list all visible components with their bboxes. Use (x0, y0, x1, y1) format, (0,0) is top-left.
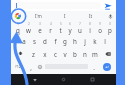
button[interactable]: s (29, 34, 40, 47)
button[interactable]: . (89, 60, 98, 73)
staticText: x (43, 50, 47, 58)
button[interactable]: h (70, 34, 80, 47)
staticText: 5 (60, 22, 62, 26)
button[interactable] (14, 2, 101, 9)
staticText: f (54, 37, 57, 45)
staticText: k (93, 37, 97, 45)
staticText: p (108, 26, 112, 34)
staticText: w (26, 26, 31, 34)
staticText: 7 (79, 22, 81, 26)
button[interactable]: j (80, 34, 90, 47)
staticText: It (89, 13, 93, 19)
staticText: l (104, 37, 106, 45)
button[interactable]: It (78, 11, 104, 21)
staticText: 3 (39, 22, 41, 26)
button[interactable]: Shift (12, 47, 28, 60)
staticText: I (64, 13, 66, 19)
button[interactable]: b (70, 47, 80, 60)
staticText: u (78, 26, 82, 34)
staticText: e (38, 26, 42, 34)
staticText: o (98, 26, 102, 34)
staticText: ?123 (15, 64, 24, 69)
button[interactable]: 6 (65, 22, 75, 34)
button[interactable]: Google search (11, 11, 25, 21)
staticText: m (92, 50, 98, 58)
button[interactable]: Backspace (100, 47, 115, 60)
staticText: c (54, 50, 57, 58)
button[interactable]: n (80, 47, 90, 60)
button[interactable]: Emoji (35, 60, 44, 73)
staticText: I'm (35, 13, 42, 19)
staticText: q (16, 26, 20, 34)
button[interactable]: m (90, 47, 100, 60)
staticText: a (22, 37, 26, 45)
staticText: j (84, 37, 86, 45)
staticText: 1 (17, 22, 19, 26)
button[interactable]: I'm (25, 11, 52, 21)
staticText: n (83, 50, 87, 58)
button[interactable]: k (90, 34, 100, 47)
button[interactable]: 8 (85, 22, 95, 34)
button[interactable]: f (50, 34, 60, 47)
button[interactable]: Voice input (104, 11, 116, 21)
button[interactable]: 4 (45, 22, 55, 34)
staticText: s (33, 37, 36, 45)
staticText: y (68, 26, 72, 34)
staticText: i (89, 26, 91, 34)
button[interactable]: l (100, 34, 110, 47)
button[interactable]: Home (58, 74, 69, 85)
button[interactable]: z (28, 47, 39, 60)
staticText: d (43, 37, 47, 45)
staticText: , (30, 63, 32, 71)
staticText: r (49, 26, 52, 34)
button[interactable]: Enter (103, 63, 111, 71)
button[interactable]: 1 (12, 22, 23, 34)
staticText: b (73, 50, 77, 58)
staticText: 0 (109, 22, 111, 26)
button[interactable]: 3 (34, 22, 45, 34)
staticText: v (63, 50, 67, 58)
button[interactable]: v (60, 47, 70, 60)
button[interactable]: 0 (105, 22, 115, 34)
button[interactable]: I (52, 11, 78, 21)
staticText: 9 (99, 22, 101, 26)
staticText: h (73, 37, 77, 45)
button[interactable]: ?123 (12, 60, 27, 73)
button[interactable]: 5 (55, 22, 65, 34)
button[interactable]: , (27, 60, 35, 73)
staticText: g (63, 37, 67, 45)
button[interactable]: a (18, 34, 29, 47)
staticText: t (59, 26, 62, 34)
staticText: . (93, 63, 95, 71)
button[interactable]: 9 (95, 22, 105, 34)
staticText: z (32, 50, 35, 58)
staticText: 8 (89, 22, 91, 26)
button[interactable]: 7 (75, 22, 85, 34)
button[interactable]: c (50, 47, 60, 60)
button[interactable]: 2 (23, 22, 34, 34)
button[interactable]: g (60, 34, 70, 47)
button[interactable]: x (39, 47, 50, 60)
button[interactable]: d (40, 34, 50, 47)
button[interactable]: Send (103, 1, 113, 11)
staticText: 4 (50, 22, 52, 26)
staticText: 2 (28, 22, 30, 26)
staticText: 6 (69, 22, 71, 26)
button[interactable]: Back (29, 74, 40, 85)
button[interactable]: Recent apps (87, 74, 98, 85)
